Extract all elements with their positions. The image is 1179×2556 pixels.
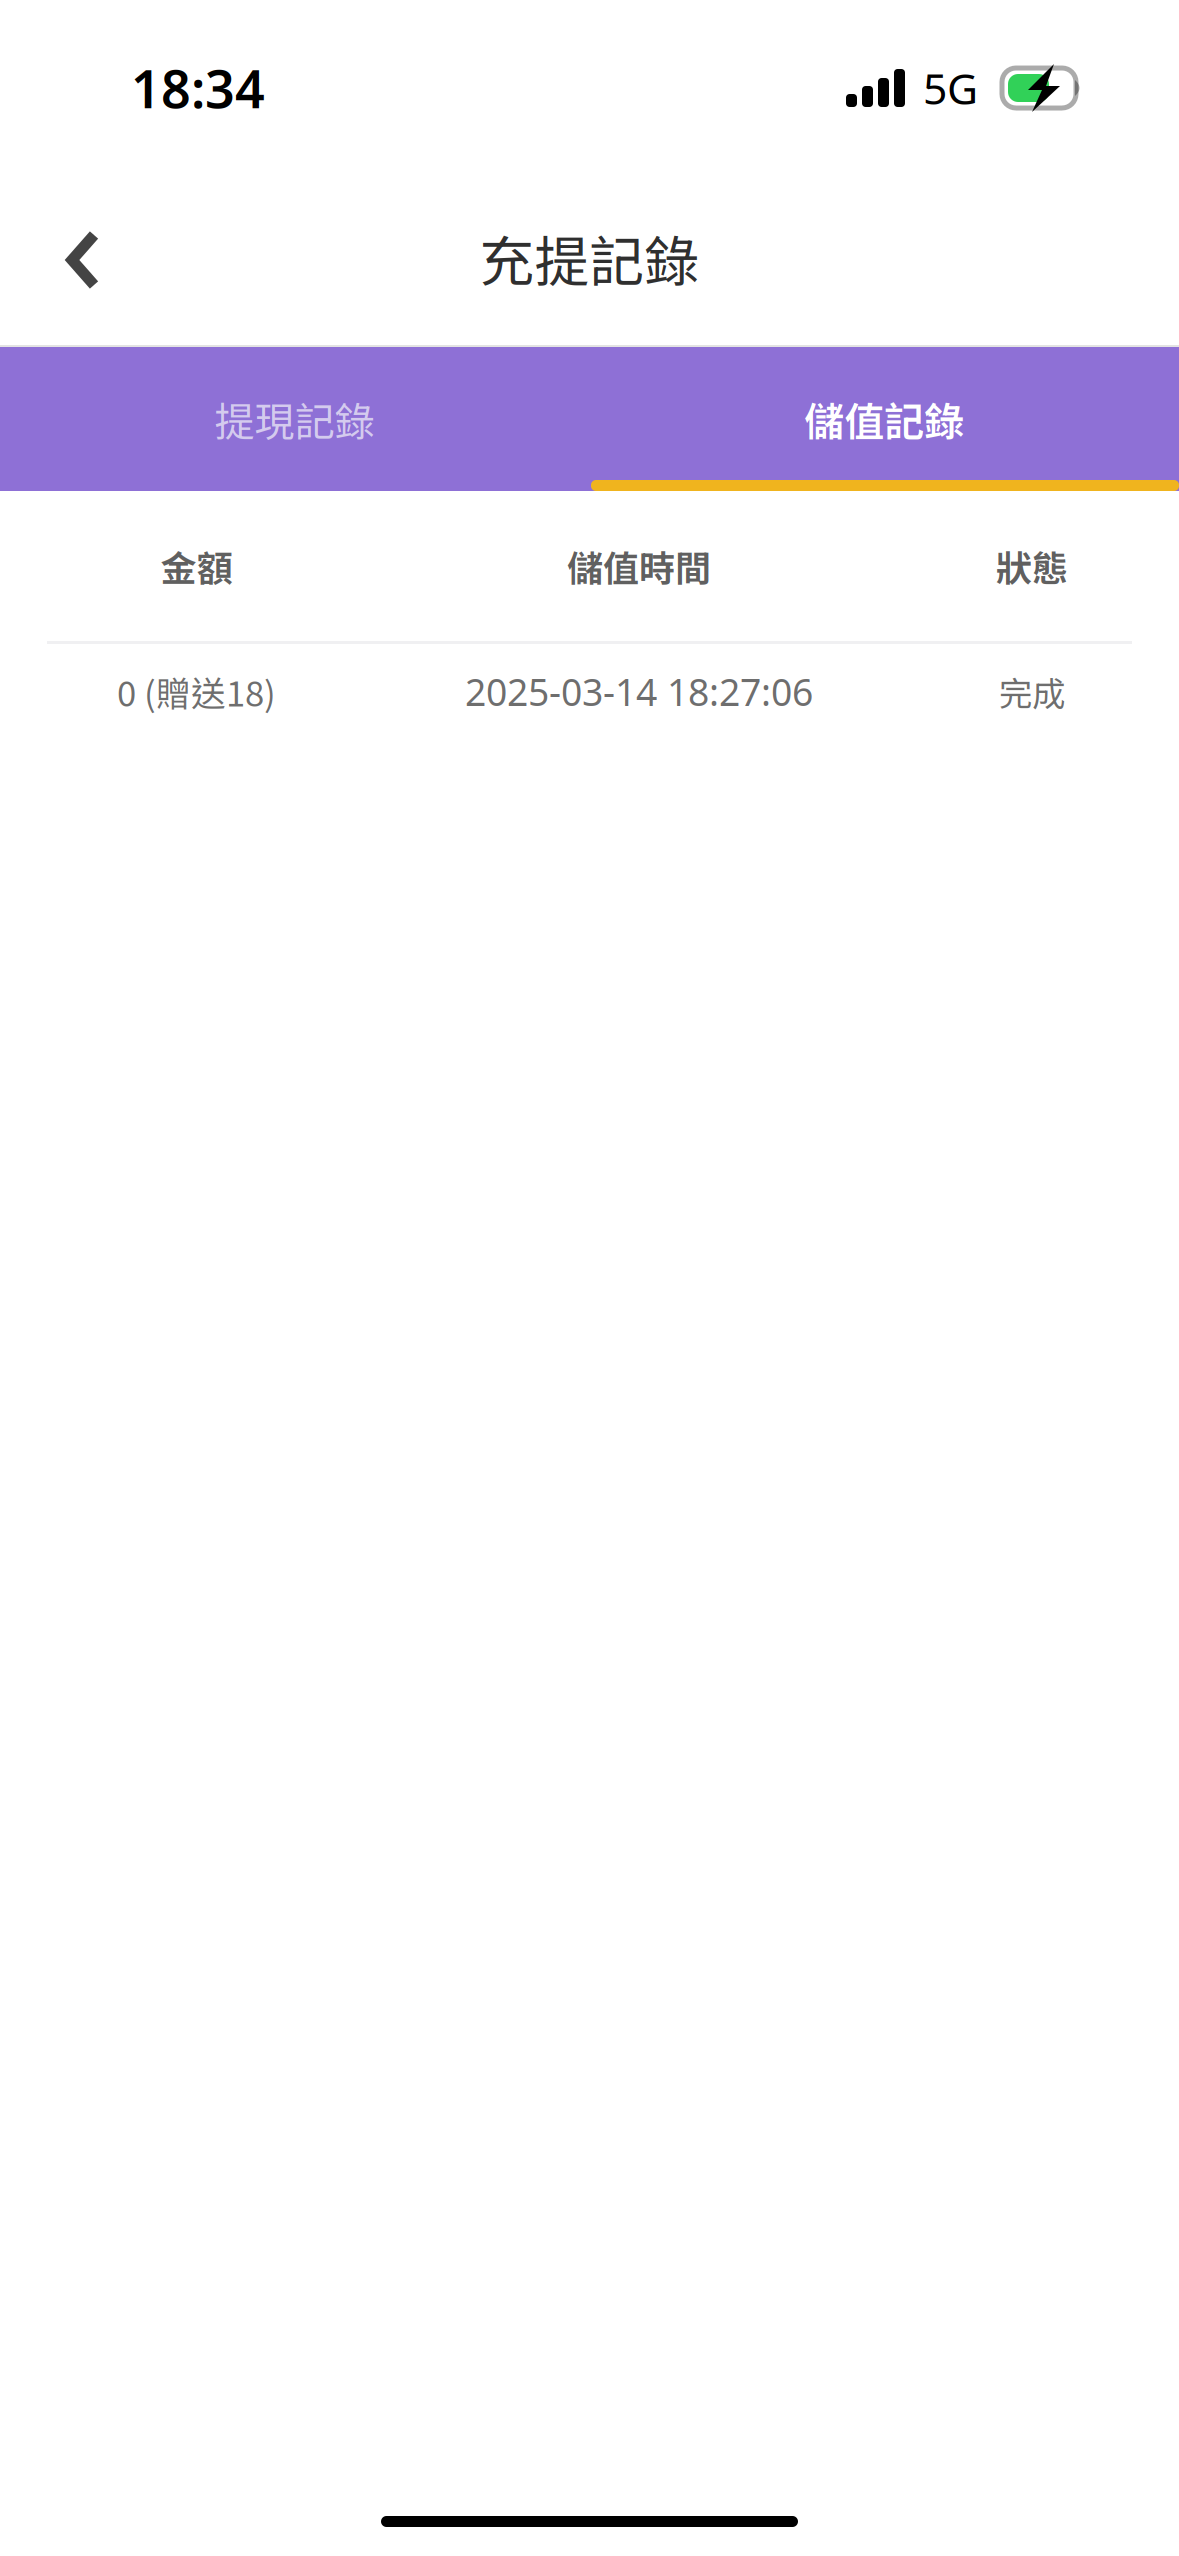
staticText: 5G [923, 60, 978, 116]
staticText: 儲值時間 [567, 540, 711, 592]
staticText: 18:34 [131, 53, 265, 123]
staticText: 提現記錄 [215, 390, 375, 448]
staticText: 0 (贈送18) [117, 666, 276, 717]
staticText: 完成 [999, 667, 1065, 716]
staticText: 金額 [160, 540, 232, 592]
staticText: 狀態 [996, 540, 1068, 592]
staticText: 充提記錄 [479, 218, 699, 298]
staticText: 2025-03-14 18:27:06 [465, 667, 813, 716]
staticText: 儲值記錄 [804, 390, 964, 448]
button[interactable]: Back [33, 206, 133, 310]
button[interactable]: 提現記錄 [0, 347, 589, 491]
button[interactable]: 0 (贈送18) [0, 644, 1179, 739]
button[interactable]: 儲值記錄 [589, 347, 1179, 491]
